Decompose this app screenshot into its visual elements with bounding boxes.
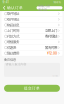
staticText: 确认订单 <box>7 5 23 10</box>
staticText: 优惠券 <box>7 45 16 50</box>
staticText: 付款方式 <box>7 34 19 38</box>
button[interactable]: 预估费用 <box>1 50 62 56</box>
staticText: 预估费用 <box>7 51 19 55</box>
button[interactable]: 物品信息 <box>1 22 62 28</box>
staticText: 上门时间 <box>7 28 19 33</box>
staticText: 取件地址 <box>7 11 19 16</box>
button[interactable]: 优惠券 <box>1 45 62 51</box>
staticText: 备注信息 <box>4 58 16 62</box>
staticText: 寄付现结 <box>45 34 57 38</box>
button[interactable]: 取件地址 <box>1 11 62 17</box>
button[interactable]: Back <box>1 6 7 10</box>
staticText: 请输入搜索内容 <box>38 4 50 12</box>
staticText: 9:41 <box>2 0 8 4</box>
button[interactable]: 请输入搜索内容 <box>36 6 62 9</box>
staticText: 提交订单 <box>24 86 40 91</box>
button[interactable]: 提交订单 <box>4 85 60 92</box>
staticText: 0/50 <box>52 74 58 77</box>
button[interactable]: 上门时间 <box>1 28 62 34</box>
staticText: 立即上门 <box>45 28 57 33</box>
staticText: 暂无可用 <box>45 45 57 50</box>
staticText: 收件地址 <box>7 17 19 22</box>
staticText: ¥12.00 <box>47 51 57 55</box>
staticText: 物品信息 <box>7 23 19 27</box>
button[interactable]: 付款方式 <box>1 34 62 39</box>
staticText: 100% <box>53 1 61 4</box>
staticText: 增值服务 <box>7 40 19 44</box>
button[interactable]: 收件地址 <box>1 17 62 22</box>
button[interactable]: 增值服务 <box>1 39 62 45</box>
staticText: 请输入备注内容 <box>6 62 27 66</box>
